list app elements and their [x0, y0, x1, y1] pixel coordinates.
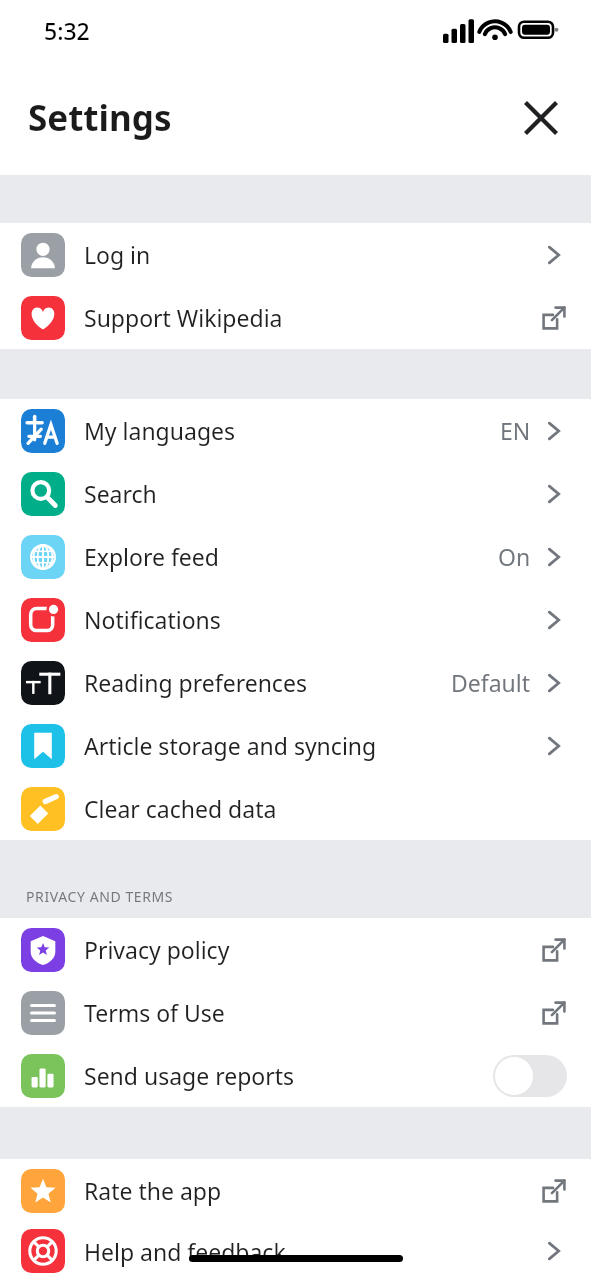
staticText: Notifications — [84, 604, 541, 635]
staticText: Terms of Use — [84, 997, 541, 1028]
staticText: EN — [500, 415, 531, 446]
button[interactable]: Close — [515, 92, 567, 144]
staticText: Explore feed — [84, 541, 498, 572]
staticText: On — [498, 541, 531, 572]
staticText: Log in — [84, 239, 541, 270]
staticText: Rate the app — [84, 1175, 541, 1206]
staticText: PRIVACY AND TERMS — [26, 887, 174, 906]
staticText: Send usage reports — [84, 1060, 493, 1091]
button[interactable]: Clear cached data — [0, 777, 591, 840]
staticText: Article storage and syncing — [84, 730, 541, 761]
staticText: Reading preferences — [84, 667, 451, 698]
staticText: Help and feedback — [84, 1236, 541, 1267]
button[interactable]: Reading preferences — [0, 651, 591, 714]
button[interactable]: Help and feedback — [0, 1222, 591, 1280]
button[interactable]: Search — [0, 462, 591, 525]
button[interactable]: Privacy policy — [0, 918, 591, 981]
staticText: My languages — [84, 415, 500, 446]
staticText: Settings — [28, 94, 172, 142]
staticText: Support Wikipedia — [84, 302, 541, 333]
staticText: Privacy policy — [84, 934, 541, 965]
button[interactable]: Send usage reports — [0, 1044, 591, 1107]
staticText: 5:32 — [44, 15, 90, 46]
button[interactable]: Explore feed — [0, 525, 591, 588]
button[interactable]: My languages — [0, 399, 591, 462]
button[interactable]: Support Wikipedia — [0, 286, 591, 349]
staticText: Search — [84, 478, 541, 509]
button[interactable]: Terms of Use — [0, 981, 591, 1044]
button[interactable]: Notifications — [0, 588, 591, 651]
button[interactable]: Log in — [0, 223, 591, 286]
button[interactable]: Rate the app — [0, 1159, 591, 1222]
button[interactable]: Send usage reports toggle — [493, 1055, 567, 1097]
staticText: Clear cached data — [84, 793, 541, 824]
staticText: Default — [451, 667, 531, 698]
button[interactable]: Article storage and syncing — [0, 714, 591, 777]
